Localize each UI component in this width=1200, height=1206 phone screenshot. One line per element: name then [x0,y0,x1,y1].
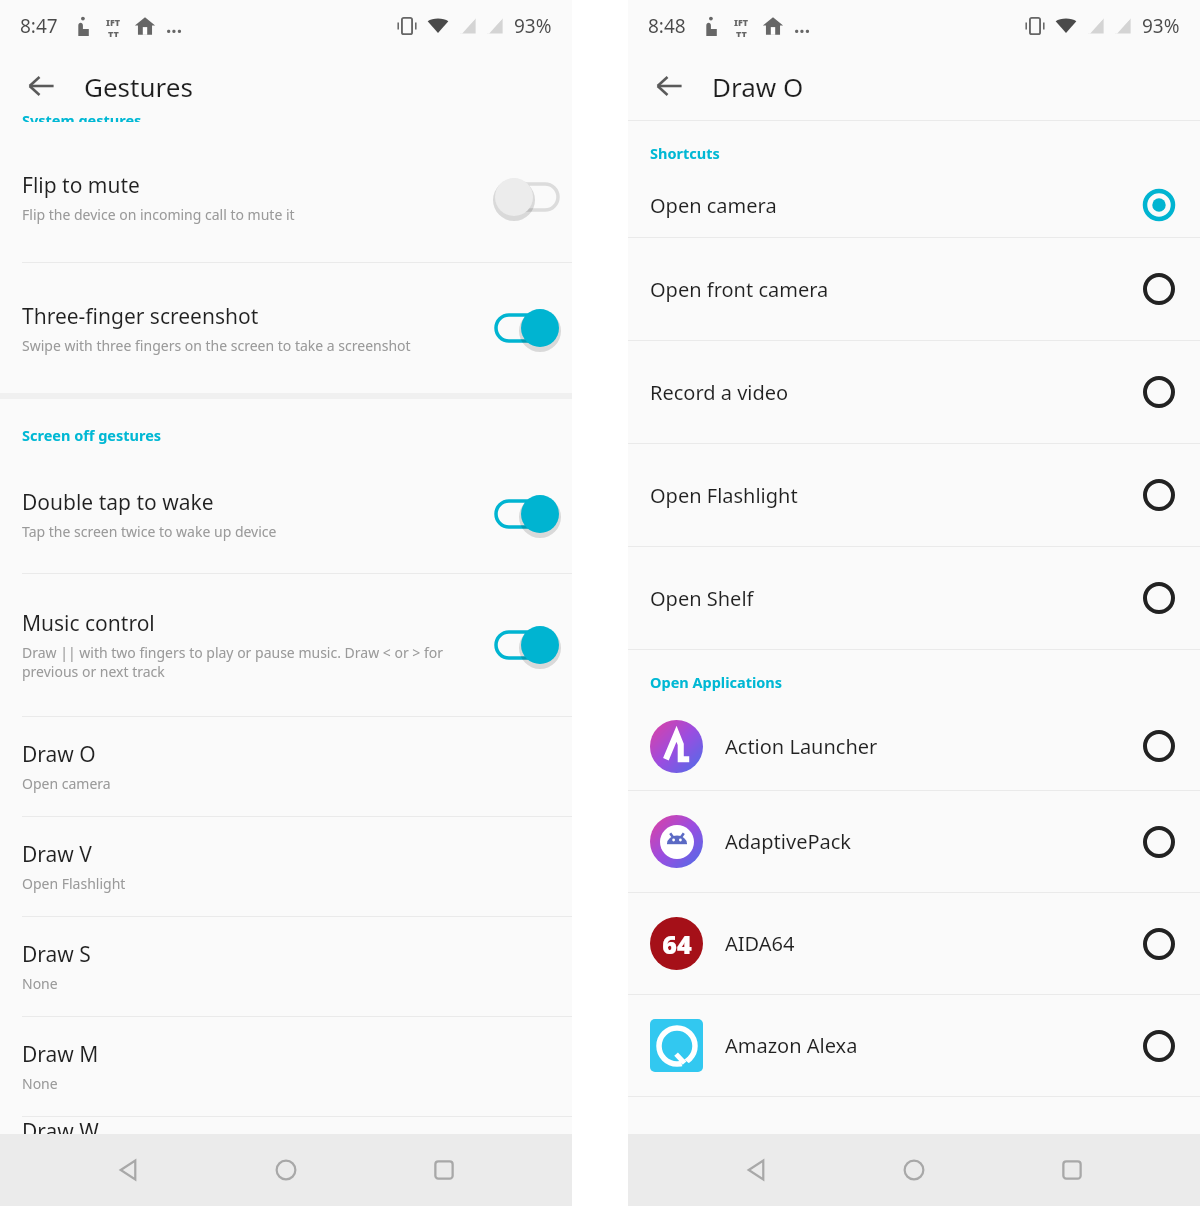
staticText: Draw O [22,740,96,769]
staticText: TT [736,28,747,37]
button[interactable]: Open front camera [628,238,1200,340]
button[interactable]: Music control [0,574,572,716]
button[interactable]: Recent apps [1042,1140,1102,1200]
button[interactable]: Action Launcher [628,702,1200,790]
button[interactable]: Open camera [628,173,1200,237]
button[interactable]: Draw M [0,1017,572,1116]
staticText: Open Shelf [650,585,1142,612]
staticText: Draw O [712,69,804,104]
staticText: Open Flashlight [22,874,126,893]
staticText: Draw || with two fingers to play or paus… [22,643,444,681]
staticText: 8:48 [648,13,686,39]
staticText: None [22,1074,58,1093]
button[interactable]: Three-finger screenshot [0,263,572,393]
staticText: Gestures [84,69,193,104]
button[interactable]: Record a video [628,341,1200,443]
button[interactable]: Open Flashlight [628,444,1200,546]
staticText: Music control [22,609,155,638]
staticText: Flip to mute [22,171,140,200]
button[interactable]: Amazon Alexa [628,995,1200,1096]
staticText: Tap the screen twice to wake up device [22,522,277,541]
button[interactable]: Back [642,59,696,113]
staticText: Draw V [22,840,92,869]
staticText: 93% [1142,13,1180,39]
staticText: ... [794,13,811,39]
staticText: 93% [514,13,552,39]
staticText: Screen off gestures [22,425,162,445]
button[interactable]: Home [884,1140,944,1200]
button[interactable]: Flip to mute [0,132,572,262]
button[interactable]: Home [256,1140,316,1200]
staticText: Open Flashlight [650,482,1142,509]
staticText: None [22,974,58,993]
staticText: ... [166,13,183,39]
staticText: Swipe with three fingers on the screen t… [22,336,411,355]
staticText: Open Applications [650,672,783,692]
button[interactable]: Open Shelf [628,547,1200,649]
staticText: Shortcuts [650,143,720,163]
staticText: Double tap to wake [22,488,214,517]
staticText: 64 [662,927,692,961]
button[interactable]: AdaptivePack [628,791,1200,892]
staticText: TT [108,28,119,37]
button[interactable]: Draw V [0,817,572,916]
button[interactable]: Back [98,1140,158,1200]
staticText: AIDA64 [725,930,1142,957]
button[interactable]: Back [726,1140,786,1200]
button[interactable]: Draw W [0,1117,572,1134]
button[interactable]: Draw S [0,917,572,1016]
staticText: Draw S [22,940,91,969]
button[interactable]: Double tap to wake [0,455,572,573]
staticText: Three-finger screenshot [22,302,259,331]
staticText: AdaptivePack [725,828,1142,855]
button[interactable]: Back [14,59,68,113]
button[interactable]: Draw O [0,717,572,816]
staticText: Record a video [650,379,1142,406]
staticText: Flip the device on incoming call to mute… [22,205,295,224]
staticText: 8:47 [20,13,58,39]
staticText: Draw M [22,1040,99,1069]
staticText: IFT [734,16,749,28]
staticText: System gestures [22,110,142,122]
staticText: IFT [106,16,121,28]
staticText: Action Launcher [725,733,1142,760]
staticText: Open front camera [650,276,1142,303]
staticText: Open camera [22,774,111,793]
staticText: Amazon Alexa [725,1032,1142,1059]
staticText: Open camera [650,192,1142,219]
button[interactable]: 64 [628,893,1200,994]
staticText: Draw W [22,1117,99,1134]
button[interactable]: Recent apps [414,1140,474,1200]
